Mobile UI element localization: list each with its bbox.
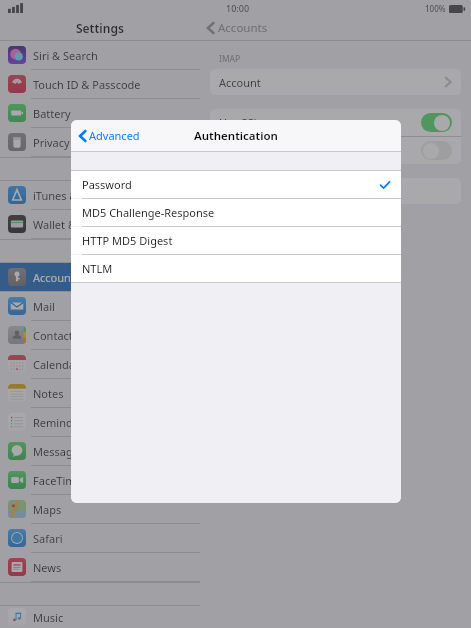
button[interactable]: Wallet & Apple Pay <box>0 210 200 238</box>
staticText: Maps <box>33 502 62 517</box>
button[interactable]: Use SSL on <box>421 113 452 132</box>
staticText: Account <box>219 75 261 90</box>
staticText: Contacts <box>33 328 79 343</box>
staticText: Notes <box>33 386 64 401</box>
button[interactable]: MD5 Challenge-Response <box>71 199 401 226</box>
button[interactable]: Notes <box>0 379 200 407</box>
staticText: Touch ID & Passcode <box>33 77 141 92</box>
staticText: Password <box>82 177 132 192</box>
staticText: HTTP MD5 Digest <box>82 233 173 248</box>
button[interactable]: Use SSL <box>210 109 461 136</box>
staticText: iTunes & App Store <box>33 188 131 203</box>
staticText: Advanced <box>89 128 140 143</box>
staticText: Authentication <box>194 128 278 144</box>
staticText: Messages <box>33 444 85 459</box>
staticText: Accounts <box>218 20 268 36</box>
staticText: Siri & Search <box>33 48 98 63</box>
staticText: 10:00 <box>226 2 250 14</box>
staticText: Reminders <box>33 415 89 430</box>
button[interactable]: FaceTime <box>0 466 200 494</box>
button[interactable]: Touch ID & Passcode <box>0 70 200 98</box>
staticText: News <box>33 560 62 575</box>
button[interactable]: Accounts & Passwords <box>0 263 200 291</box>
button[interactable]: Password <box>71 171 401 198</box>
button[interactable]: Messages <box>0 437 200 465</box>
button[interactable]: Battery <box>0 99 200 127</box>
button[interactable]: S/MIME off <box>421 141 452 160</box>
button[interactable] <box>210 178 461 204</box>
staticText: NTLM <box>82 261 113 276</box>
button[interactable]: Reminders <box>0 408 200 436</box>
staticText: IMAP <box>219 53 241 65</box>
button[interactable]: NTLM <box>71 255 401 282</box>
button[interactable]: S/MIME <box>210 137 461 164</box>
staticText: 100% <box>425 3 446 14</box>
button[interactable]: iTunes & App Store <box>0 181 200 209</box>
staticText: Battery <box>33 106 71 121</box>
staticText: FaceTime <box>33 473 82 488</box>
button[interactable]: Siri & Search <box>0 41 200 69</box>
button[interactable]: Mail <box>0 292 200 320</box>
button[interactable]: News <box>0 553 200 581</box>
staticText: Privacy <box>33 135 70 150</box>
button[interactable]: Calendar <box>0 350 200 378</box>
staticText: Use SSL <box>219 115 260 130</box>
staticText: Music <box>33 610 64 625</box>
staticText: Calendar <box>33 357 80 372</box>
button[interactable]: Music <box>0 606 200 628</box>
button[interactable]: Account <box>210 69 461 95</box>
button[interactable]: Accounts <box>200 16 471 40</box>
button[interactable]: Contacts <box>0 321 200 349</box>
button[interactable]: HTTP MD5 Digest <box>71 227 401 254</box>
button[interactable]: Privacy <box>0 128 200 156</box>
staticText: MD5 Challenge-Response <box>82 205 215 220</box>
staticText: Wallet & Apple Pay <box>33 217 130 232</box>
staticText: Mail <box>33 299 55 314</box>
staticText: Accounts & Passwords <box>33 270 149 285</box>
staticText: Safari <box>33 531 63 546</box>
staticText: Settings <box>76 20 124 36</box>
button[interactable]: Advanced <box>71 120 148 151</box>
button[interactable]: Maps <box>0 495 200 523</box>
staticText: S/MIME <box>219 143 259 158</box>
button[interactable]: Safari <box>0 524 200 552</box>
